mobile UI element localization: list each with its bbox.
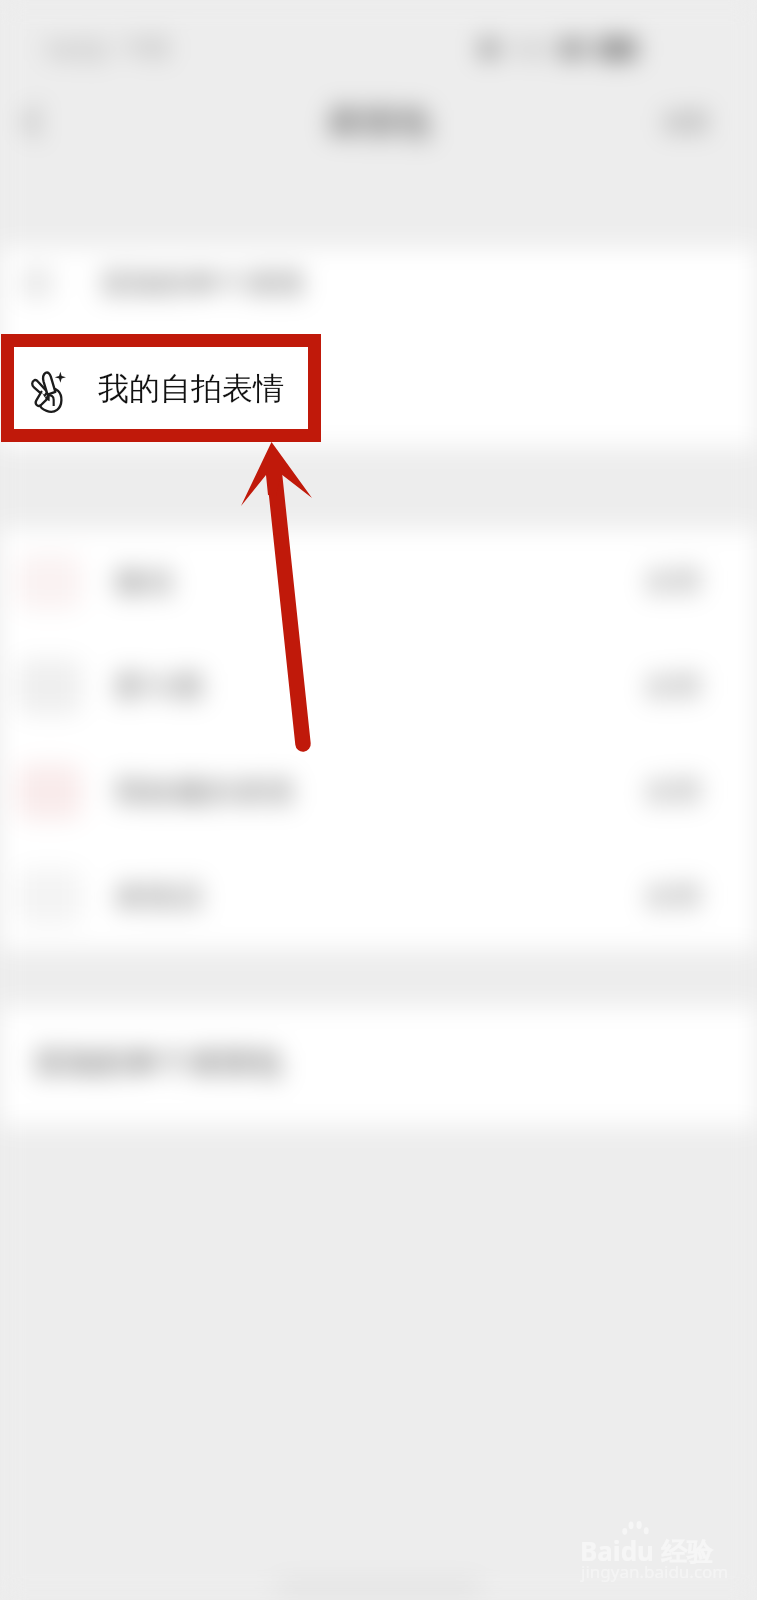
button[interactable]: Back — [6, 96, 58, 148]
staticText: 微信 — [114, 563, 174, 601]
staticText: 我收藏的表情 — [114, 773, 294, 811]
button[interactable]: 微信 — [0, 529, 757, 634]
staticText: 我的自拍表情 — [98, 369, 284, 408]
staticText: 全部 — [644, 773, 702, 810]
button[interactable]: 添加的单个表情包 — [0, 1007, 757, 1126]
staticText: 表情店 — [114, 878, 204, 916]
button[interactable]: 设置 — [655, 102, 717, 143]
button[interactable]: 我的自拍表情 — [14, 347, 308, 429]
staticText: 全部 — [644, 563, 702, 600]
staticText: 添加的单个表情 — [101, 265, 304, 302]
staticText: 全部 — [644, 878, 702, 915]
staticText: 爱斗图 — [114, 668, 204, 706]
button[interactable]: 爱斗图 — [0, 634, 757, 739]
button[interactable]: 我收藏的表情 — [0, 739, 757, 844]
staticText: 全部 — [644, 668, 702, 705]
staticText: 设置 — [663, 108, 709, 137]
button[interactable]: 表情店 — [0, 844, 757, 949]
button[interactable]: 添加的单个表情 — [0, 248, 757, 318]
staticText: Baidu 经验 — [580, 1533, 713, 1569]
staticText: 添加的单个表情包 — [34, 1043, 282, 1082]
staticText: 表情包 — [326, 100, 431, 144]
